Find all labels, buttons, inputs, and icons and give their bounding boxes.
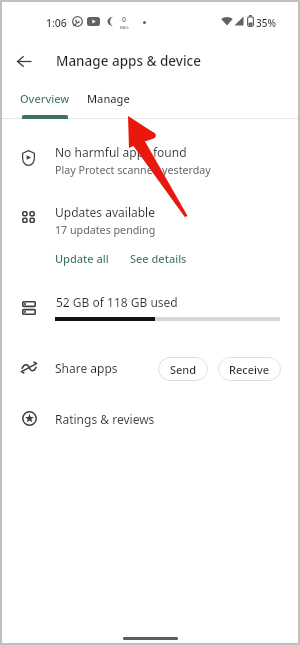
staticText: 52 GB of 118 GB used: [56, 294, 178, 310]
button[interactable]: See details: [130, 251, 187, 266]
button[interactable]: Send: [158, 357, 208, 381]
button[interactable]: Update all: [55, 251, 109, 266]
staticText: KB/s: [120, 25, 129, 30]
staticText: 0: [122, 15, 127, 25]
staticText: Receive: [229, 362, 270, 377]
staticText: 1:06: [46, 16, 67, 30]
staticText: No harmful apps found: [55, 144, 187, 160]
staticText: Share apps: [55, 360, 118, 376]
staticText: 17 updates pending: [55, 223, 156, 238]
staticText: Ratings & reviews: [55, 411, 155, 427]
button[interactable]: Receive: [218, 357, 281, 381]
button[interactable]: [0, 356, 300, 386]
button[interactable]: Overview: [8, 82, 82, 115]
staticText: Overview: [20, 91, 70, 106]
staticText: Updates available: [55, 204, 155, 220]
staticText: See details: [130, 251, 187, 266]
button[interactable]: [0, 144, 300, 184]
button[interactable]: [0, 294, 300, 326]
button[interactable]: [0, 405, 300, 435]
staticText: Update all: [55, 251, 109, 266]
staticText: Manage: [87, 91, 130, 106]
staticText: 35%: [256, 16, 276, 30]
button[interactable]: Manage: [77, 82, 139, 115]
button[interactable]: [0, 205, 300, 245]
staticText: Send: [170, 362, 197, 377]
staticText: Play Protect scanned yesterday: [55, 163, 211, 178]
button[interactable]: Back: [8, 45, 40, 77]
staticText: Manage apps & device: [56, 52, 201, 70]
